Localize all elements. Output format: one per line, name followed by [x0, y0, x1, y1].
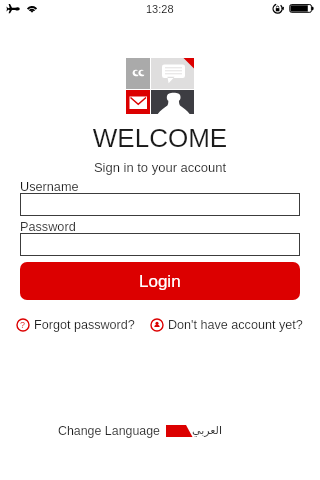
- staticText: Forgot password?: [34, 318, 135, 332]
- button[interactable]: [20, 193, 300, 216]
- button[interactable]: Register: [150, 318, 303, 332]
- other: Register: [150, 318, 164, 332]
- button[interactable]: Login: [20, 262, 300, 300]
- staticText: Sign in to your account: [0, 160, 320, 175]
- staticText: ?: [20, 320, 26, 330]
- button[interactable]: [20, 233, 300, 256]
- staticText: Password: [20, 220, 76, 234]
- staticText: WELCOME: [0, 123, 320, 152]
- staticText: Don't have account yet?: [168, 318, 303, 332]
- button[interactable]: Switch to Arabic: [166, 421, 222, 441]
- button[interactable]: Forgot password: [16, 318, 135, 332]
- staticText: Login: [139, 272, 181, 291]
- other: Forgot password: [16, 318, 30, 332]
- staticText: 13:28: [146, 3, 174, 15]
- staticText: Username: [20, 180, 79, 194]
- staticText: العربي: [192, 424, 223, 437]
- staticText: Change Language: [58, 424, 160, 438]
